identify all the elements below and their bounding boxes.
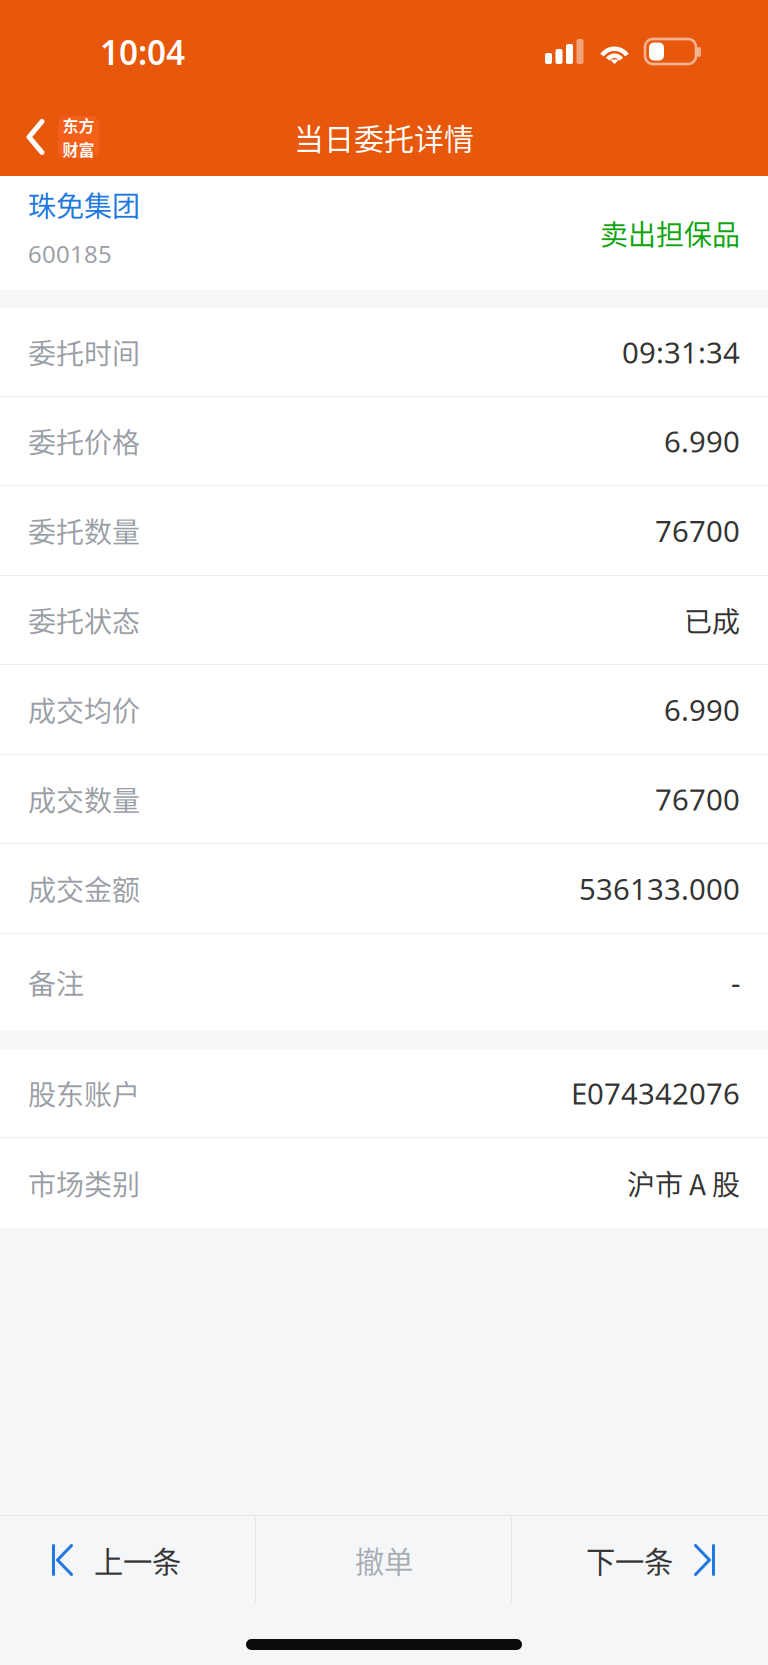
staticText: 珠免集团 <box>28 184 140 225</box>
staticText: 成交数量 <box>28 779 140 819</box>
staticText: 备注 <box>28 962 84 1003</box>
staticText: 10:04 <box>100 30 185 74</box>
staticText: 76700 <box>655 511 740 550</box>
staticText: 成交均价 <box>28 689 140 730</box>
staticText: 536133.000 <box>579 869 740 908</box>
staticText: 股东账户 <box>28 1073 140 1113</box>
staticText: 上一条 <box>94 1539 181 1581</box>
staticText: 6.990 <box>664 690 740 729</box>
staticText: 东方 <box>62 113 94 136</box>
staticText: 09:31:34 <box>622 332 740 371</box>
staticText: 76700 <box>655 779 740 818</box>
staticText: 委托价格 <box>28 421 140 461</box>
staticText: 市场类别 <box>28 1163 140 1203</box>
staticText: 成交金额 <box>28 868 140 909</box>
staticText: 委托状态 <box>28 600 140 640</box>
staticText: 下一条 <box>586 1539 673 1581</box>
staticText: - <box>731 963 740 1002</box>
button[interactable]: 返回 东方财富 <box>0 98 115 176</box>
staticText: 财富 <box>62 137 94 161</box>
staticText: E074342076 <box>571 1073 740 1112</box>
button[interactable]: 下一条 <box>512 1516 768 1604</box>
staticText: 委托数量 <box>28 510 140 551</box>
staticText: 当日委托详情 <box>294 115 474 159</box>
staticText: 600185 <box>28 238 112 270</box>
button[interactable]: 上一条 <box>0 1516 256 1604</box>
staticText: 已成 <box>684 600 740 640</box>
button[interactable]: 撤单 <box>256 1516 512 1604</box>
staticText: 撤单 <box>355 1539 413 1581</box>
staticText: 6.990 <box>664 421 740 460</box>
staticText: 沪市 A 股 <box>627 1163 740 1203</box>
staticText: 委托时间 <box>28 332 140 372</box>
staticText: 卖出担保品 <box>600 213 740 253</box>
